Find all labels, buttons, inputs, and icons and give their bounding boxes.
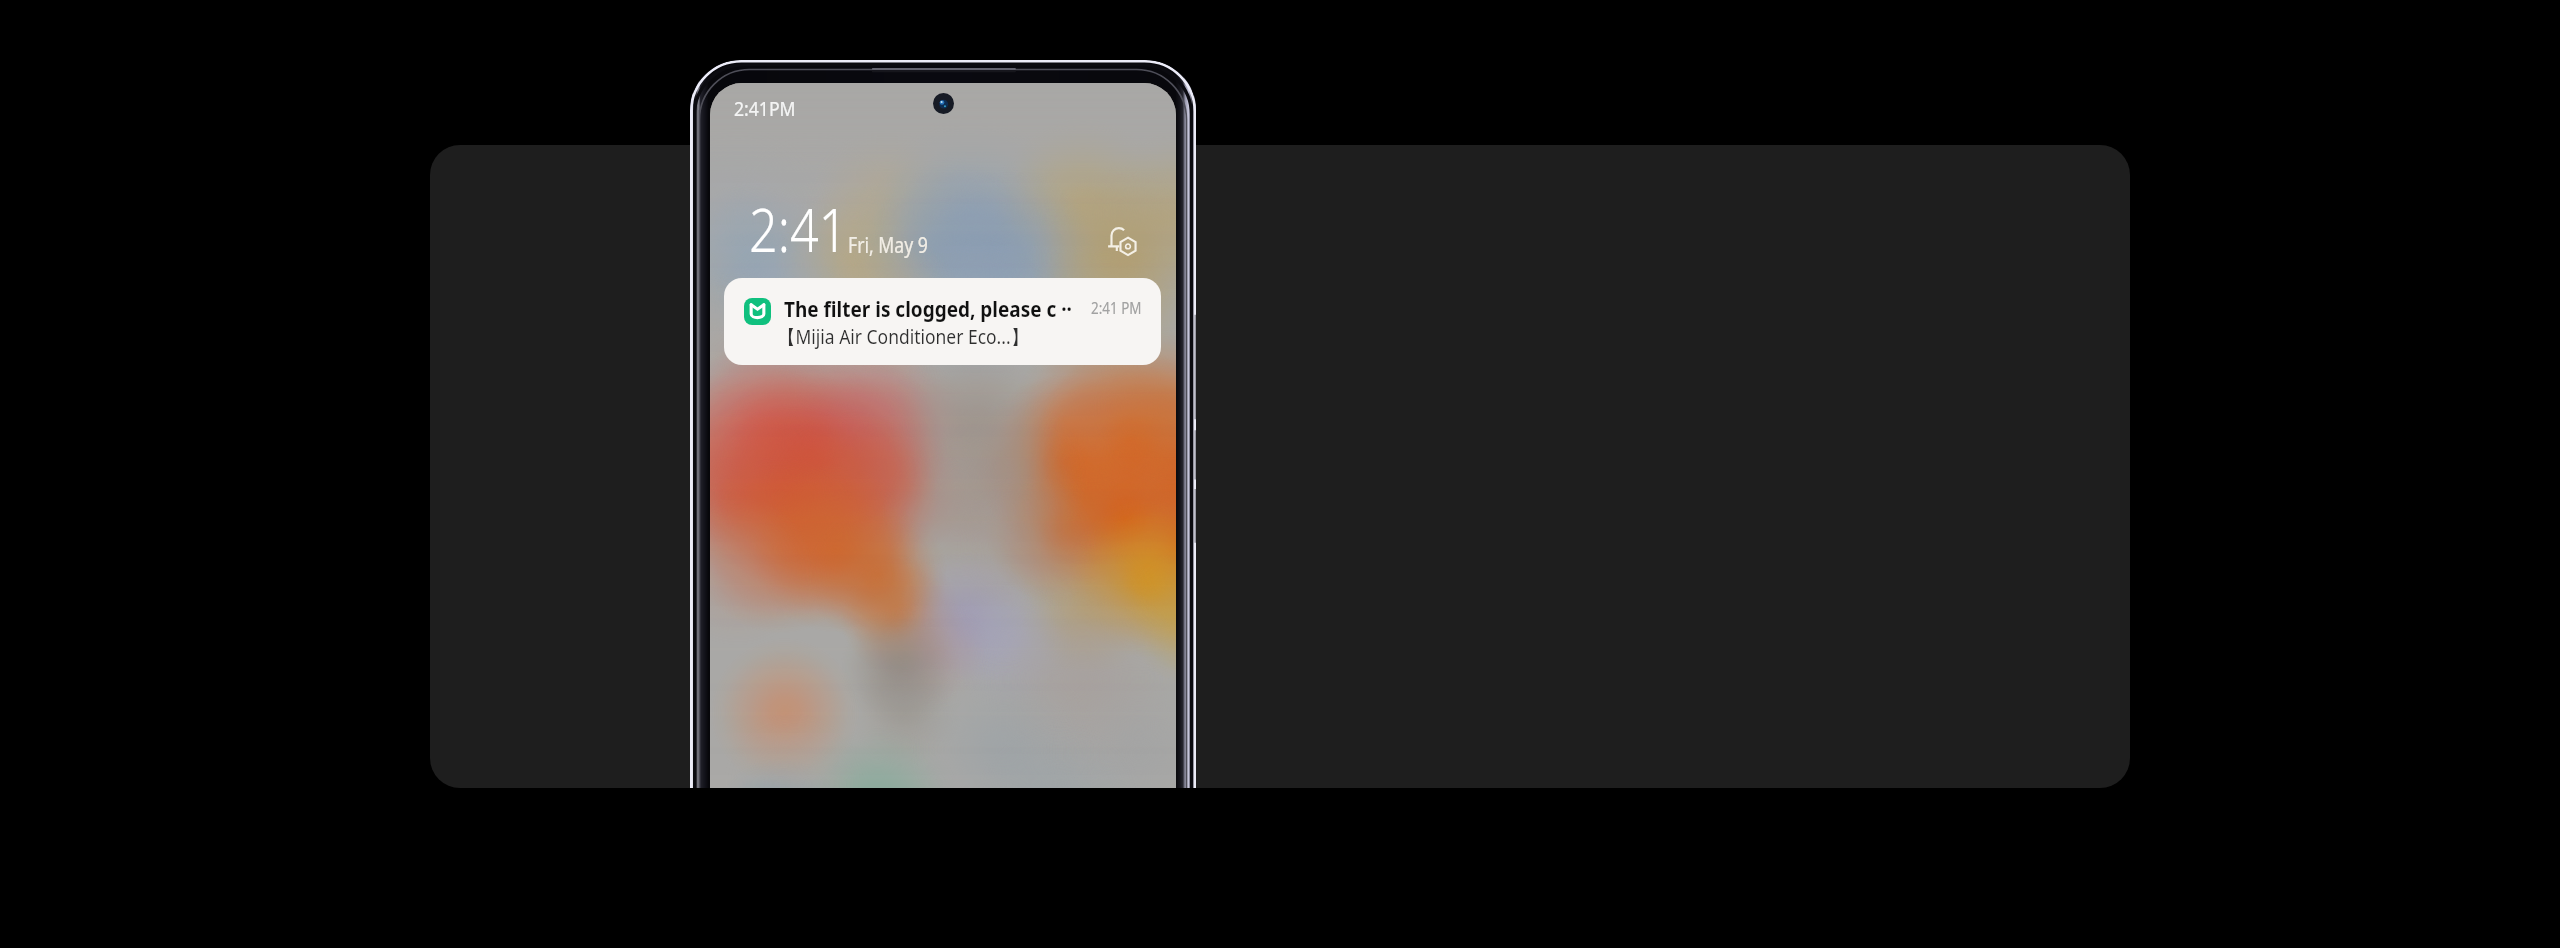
staticText: 2:41 PM [1091, 297, 1142, 319]
staticText: 2:41 [749, 188, 848, 270]
staticText: Fri, May 9 [848, 231, 929, 260]
button[interactable]: 2:41PM [728, 89, 808, 121]
staticText: 【Mijia Air Conditioner Eco...】 [778, 323, 1029, 350]
staticText: 2:41PM [734, 95, 796, 122]
button[interactable]: The filter is clogged, please c ·· [724, 278, 1161, 365]
button[interactable]: Notification settings [1104, 225, 1140, 261]
staticText: The filter is clogged, please c ·· [784, 293, 1072, 323]
